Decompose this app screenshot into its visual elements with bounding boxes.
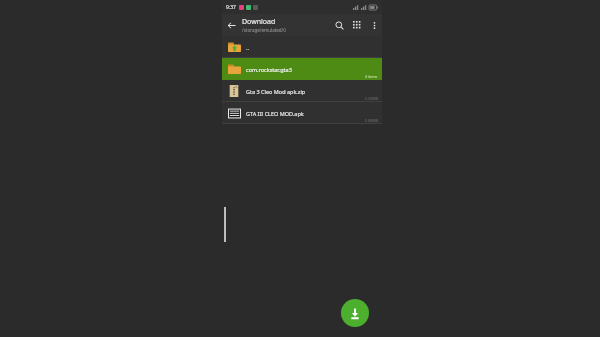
staticText: com.rockstar.gta3 [246,66,292,73]
button[interactable]: Download [341,299,369,327]
staticText: /storage/emulated/0 [242,27,286,33]
button[interactable]: Grid view [348,16,366,34]
button[interactable]: com.rockstar.gta3 [222,58,382,80]
staticText: .. [246,44,249,51]
button[interactable]: Download [242,17,330,33]
button[interactable]: Back [222,16,240,34]
button[interactable]: .. [222,36,382,58]
staticText: 9:37 [226,4,236,11]
button[interactable]: Gta 3 Cleo Mod apk.zip [222,80,382,102]
staticText: Gta 3 Cleo Mod apk.zip [246,88,306,95]
staticText: GTA III CLEO MOD.apk [246,110,304,117]
button[interactable]: More options [366,17,382,33]
staticText: 4 items [365,74,378,79]
staticText: Download [242,17,276,27]
staticText: 5.33MB [365,96,378,101]
button[interactable]: GTA III CLEO MOD.apk [222,102,382,124]
staticText: 5.04MB [365,118,378,123]
button[interactable]: Search [330,16,348,34]
